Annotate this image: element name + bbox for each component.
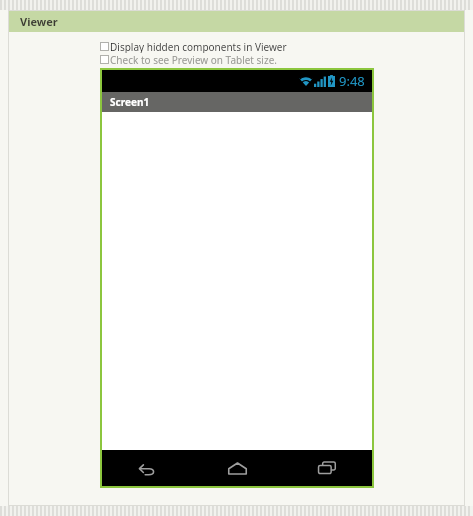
staticText: Display hidden components in Viewer [110,40,287,53]
button[interactable]: Check to see Preview on Tablet size. [8,53,465,66]
staticText: 9:48 [339,72,365,90]
staticText: Viewer [20,14,58,29]
staticText: Screen1 [110,95,150,109]
button[interactable]: Back [102,450,192,486]
staticText: Check to see Preview on Tablet size. [110,53,277,66]
button[interactable]: Viewer [8,10,465,32]
button[interactable]: Home [192,450,282,486]
button[interactable]: Screen1 [102,92,372,112]
button[interactable]: Recent apps [282,450,372,486]
button[interactable]: Display hidden components in Viewer [8,40,465,53]
